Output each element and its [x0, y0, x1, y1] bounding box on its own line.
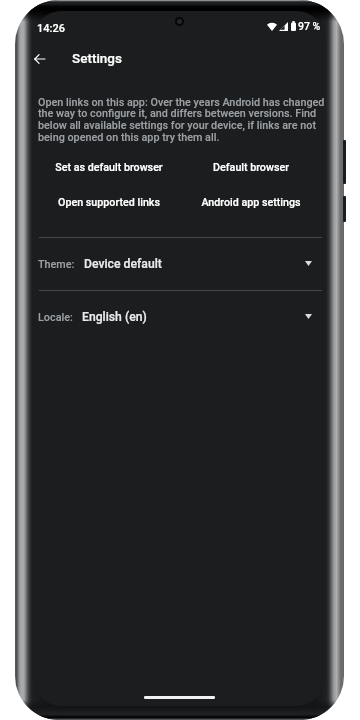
staticText: English (en)	[82, 310, 147, 324]
staticText: 14:26	[37, 22, 65, 35]
staticText: Set as default browser	[55, 161, 163, 174]
button[interactable]: Open supported links	[38, 187, 180, 217]
button[interactable]: Default browser	[180, 152, 322, 182]
staticText: Open links on this app: Over the years A…	[38, 96, 326, 144]
staticText: Settings	[72, 50, 122, 66]
staticText: Locale:	[38, 311, 73, 324]
staticText: Default browser	[213, 161, 289, 174]
button[interactable]: Locale:	[38, 297, 322, 337]
staticText: Android app settings	[201, 196, 301, 209]
staticText: Theme:	[38, 258, 75, 271]
button[interactable]: Navigate up	[32, 43, 55, 75]
staticText: Device default	[84, 257, 162, 271]
staticText: 97 %	[298, 20, 321, 32]
staticText: Open supported links	[58, 196, 160, 209]
button[interactable]: Theme:	[38, 244, 322, 284]
button[interactable]: Android app settings	[180, 187, 322, 217]
button[interactable]: Set as default browser	[38, 152, 180, 182]
